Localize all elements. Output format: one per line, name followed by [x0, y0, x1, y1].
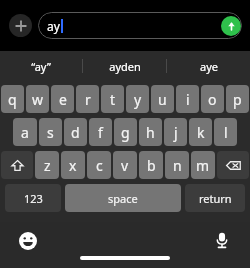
button[interactable]: p [226, 85, 249, 113]
button[interactable]: n [165, 151, 189, 179]
staticText: o [208, 90, 217, 109]
button[interactable]: e [51, 85, 74, 113]
staticText: s [47, 123, 54, 142]
button[interactable]: Send [221, 16, 241, 36]
button[interactable]: b [139, 151, 163, 179]
button[interactable]: return [185, 184, 245, 212]
button[interactable]: Backspace [217, 151, 249, 179]
staticText: a [21, 123, 29, 142]
staticText: d [71, 123, 80, 142]
staticText: space [108, 191, 138, 206]
button[interactable]: k [189, 118, 212, 146]
button[interactable]: r [76, 85, 99, 113]
button[interactable]: j [164, 118, 187, 146]
staticText: w [32, 90, 44, 109]
staticText: t [110, 90, 116, 109]
staticText: f [98, 123, 103, 142]
staticText: p [233, 90, 242, 109]
button[interactable]: v [113, 151, 137, 179]
staticText: z [44, 156, 51, 175]
button[interactable]: y [126, 85, 149, 113]
staticText: “ay” [31, 59, 51, 74]
button[interactable]: Emoji keyboard [19, 232, 37, 250]
button[interactable]: f [89, 118, 112, 146]
staticText: y [134, 90, 142, 109]
staticText: u [158, 90, 167, 109]
button[interactable]: ay [38, 12, 242, 39]
button[interactable]: c [87, 151, 111, 179]
staticText: r [85, 90, 91, 109]
staticText: ay [47, 18, 60, 34]
staticText: return [199, 191, 232, 206]
button[interactable]: t [101, 85, 124, 113]
staticText: h [146, 123, 155, 142]
staticText: l [224, 123, 228, 142]
staticText: e [59, 90, 67, 109]
staticText: i [186, 90, 190, 109]
button[interactable]: d [64, 118, 87, 146]
button[interactable]: s [39, 118, 62, 146]
button[interactable]: q [1, 85, 24, 113]
staticText: x [69, 156, 77, 175]
staticText: j [174, 123, 178, 142]
button[interactable]: a [13, 118, 37, 146]
button[interactable]: 123 [5, 184, 61, 212]
staticText: v [121, 156, 129, 175]
button[interactable]: space [65, 184, 181, 212]
button[interactable]: o [201, 85, 224, 113]
button[interactable]: m [191, 151, 215, 179]
staticText: g [121, 123, 130, 142]
staticText: m [196, 156, 210, 175]
button[interactable]: g [114, 118, 137, 146]
button[interactable]: w [26, 85, 49, 113]
staticText: c [96, 156, 103, 175]
staticText: aye [200, 59, 218, 74]
button[interactable]: Add attachment [9, 14, 32, 37]
button[interactable]: l [214, 118, 237, 146]
button[interactable]: z [35, 151, 59, 179]
button[interactable]: ayden [83, 51, 166, 81]
staticText: 123 [24, 191, 43, 206]
button[interactable]: u [151, 85, 174, 113]
button[interactable]: Voice input [213, 231, 231, 249]
staticText: b [147, 156, 156, 175]
button[interactable]: i [176, 85, 199, 113]
button[interactable]: “ay” [0, 51, 82, 81]
button[interactable]: aye [167, 51, 250, 81]
staticText: n [173, 156, 182, 175]
button[interactable]: Shift [1, 151, 33, 179]
staticText: ayden [109, 59, 141, 74]
button[interactable]: h [139, 118, 162, 146]
staticText: k [197, 123, 205, 142]
button[interactable]: x [61, 151, 85, 179]
staticText: q [8, 90, 17, 109]
